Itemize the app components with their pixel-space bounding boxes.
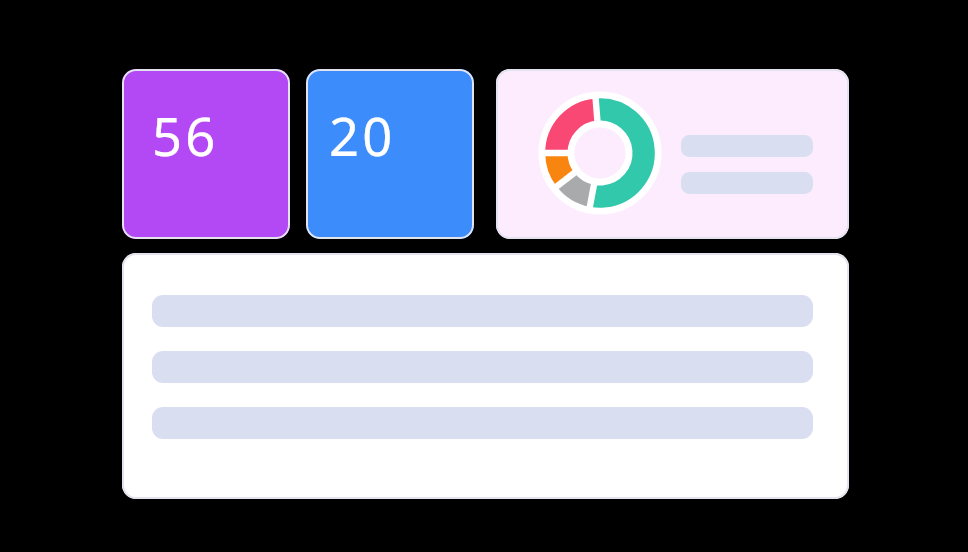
button[interactable]: 20 (306, 69, 474, 239)
button[interactable]: List item 1 (122, 281, 849, 341)
button[interactable]: Spending breakdown chart (496, 69, 849, 239)
other: Spending breakdown chart (536, 89, 664, 217)
button[interactable]: 56 (122, 69, 290, 239)
button[interactable]: List item 3 (122, 393, 849, 453)
staticText: 56 (152, 100, 219, 172)
button[interactable]: List item 2 (122, 337, 849, 397)
staticText: 20 (329, 100, 396, 172)
